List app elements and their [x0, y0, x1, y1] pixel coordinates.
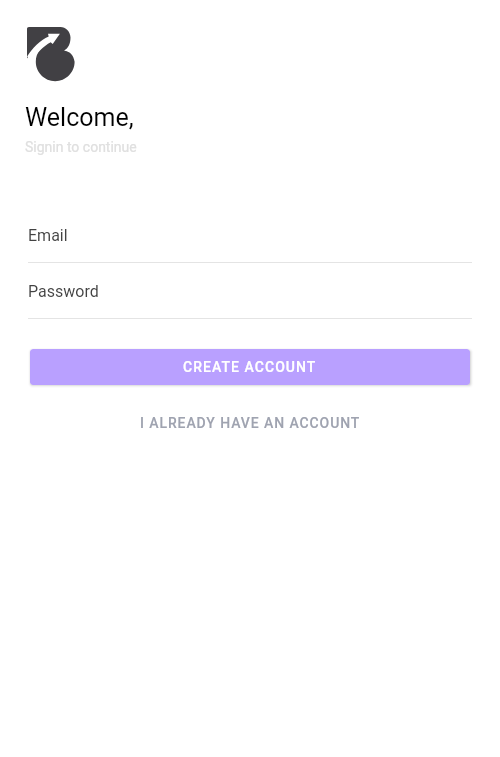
other: App logo — [27, 27, 75, 82]
button[interactable]: I ALREADY HAVE AN ACCOUNT — [0, 415, 500, 431]
staticText: Password — [28, 282, 99, 301]
staticText: Email — [28, 226, 68, 245]
staticText: Signin to continue — [25, 139, 137, 155]
staticText: Welcome, — [25, 103, 134, 132]
button[interactable]: CREATE ACCOUNT — [30, 349, 470, 385]
button[interactable]: Password — [0, 282, 500, 319]
staticText: I ALREADY HAVE AN ACCOUNT — [140, 415, 361, 431]
button[interactable]: Email — [0, 226, 500, 263]
staticText: CREATE ACCOUNT — [183, 359, 317, 375]
